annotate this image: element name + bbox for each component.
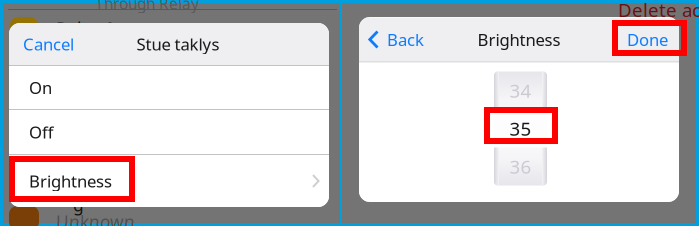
staticText: Unknown — [56, 210, 135, 226]
staticText: On — [29, 76, 52, 99]
button[interactable]: Brightness — [9, 155, 329, 207]
staticText: Cancel — [23, 33, 74, 55]
staticText: 36 — [509, 154, 531, 179]
button[interactable]: Done — [617, 17, 679, 61]
staticText: Off — [29, 121, 53, 143]
button[interactable]: Back — [359, 17, 434, 61]
staticText: Brightness — [477, 28, 560, 51]
staticText: Relay 0 — [56, 17, 115, 41]
staticText: g — [73, 193, 84, 217]
staticText: Stue taklys — [136, 33, 219, 55]
staticText: 34 — [509, 78, 531, 103]
button[interactable]: Off — [9, 110, 329, 154]
staticText: 35 — [509, 116, 531, 141]
staticText: Brightness — [29, 170, 112, 192]
staticText: Done — [627, 28, 668, 51]
staticText: Through Relay — [95, 0, 199, 14]
button[interactable]: Cancel — [9, 23, 86, 65]
staticText: Delete accessory — [618, 0, 699, 22]
staticText: Back — [387, 28, 424, 51]
button[interactable]: On — [9, 66, 329, 109]
